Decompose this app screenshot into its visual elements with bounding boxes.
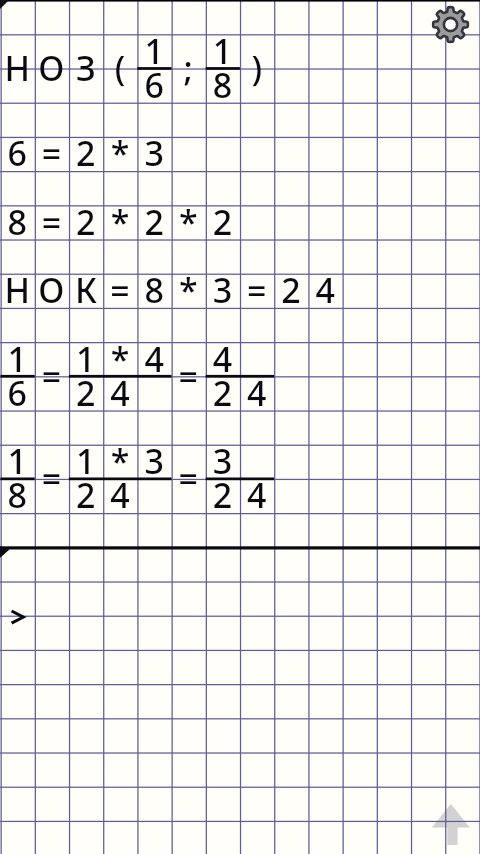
button[interactable]: Settings: [431, 5, 470, 44]
button[interactable]: Scroll up: [430, 806, 472, 848]
